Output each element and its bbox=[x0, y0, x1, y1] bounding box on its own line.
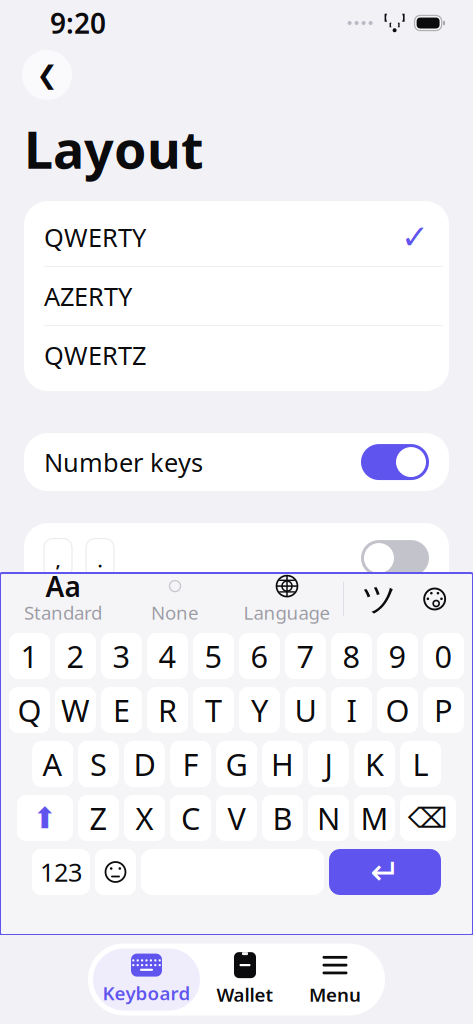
button[interactable]: K bbox=[354, 741, 395, 787]
staticText: QWERTZ bbox=[44, 338, 146, 372]
staticText: B bbox=[272, 798, 292, 838]
button[interactable]: AZERTY bbox=[24, 267, 449, 325]
staticText: R bbox=[158, 690, 177, 730]
button[interactable]: F bbox=[170, 741, 211, 787]
button[interactable]: V bbox=[216, 795, 257, 841]
staticText: G bbox=[225, 744, 247, 784]
staticText: M bbox=[360, 798, 388, 838]
staticText: ↵ bbox=[370, 852, 400, 892]
button[interactable]: 1 bbox=[9, 633, 50, 679]
button[interactable]: QWERTY bbox=[24, 208, 449, 266]
staticText: 8 bbox=[342, 636, 360, 676]
button[interactable]: 9 bbox=[377, 633, 418, 679]
button[interactable]: S bbox=[78, 741, 119, 787]
button[interactable]: O bbox=[377, 687, 418, 733]
button[interactable]: Delete bbox=[400, 795, 456, 841]
staticText: Language bbox=[243, 600, 330, 625]
button[interactable]: J bbox=[308, 741, 349, 787]
button[interactable]: Turn on bbox=[361, 540, 429, 576]
staticText: 9 bbox=[388, 636, 406, 676]
button[interactable]: 5 bbox=[193, 633, 234, 679]
staticText: AZERTY bbox=[44, 279, 132, 313]
staticText: 3 bbox=[112, 636, 130, 676]
button[interactable]: Theme bbox=[415, 577, 455, 621]
staticText: X bbox=[135, 798, 153, 838]
button[interactable]: None bbox=[119, 573, 231, 625]
button[interactable]: L bbox=[400, 741, 441, 787]
button[interactable]: Shift bbox=[17, 795, 73, 841]
button[interactable]: 0 bbox=[423, 633, 464, 679]
button[interactable]: W bbox=[55, 687, 96, 733]
staticText: S bbox=[90, 744, 107, 784]
staticText: Z bbox=[89, 798, 107, 838]
staticText: ⬆ bbox=[32, 801, 57, 835]
button[interactable]: Turn off bbox=[361, 444, 429, 480]
button[interactable]: Menu bbox=[290, 948, 380, 1010]
staticText: QWERTY bbox=[44, 220, 146, 254]
button[interactable]: Q bbox=[9, 687, 50, 733]
staticText: L bbox=[412, 744, 428, 784]
button[interactable]: D bbox=[124, 741, 165, 787]
staticText: F bbox=[182, 744, 198, 784]
button[interactable]: Keyboard bbox=[93, 948, 200, 1010]
staticText: ❮ bbox=[36, 61, 57, 89]
staticText: . bbox=[97, 548, 102, 573]
staticText: U bbox=[294, 690, 316, 730]
staticText: V bbox=[227, 798, 245, 838]
button[interactable]: Y bbox=[239, 687, 280, 733]
button[interactable]: H bbox=[262, 741, 303, 787]
button[interactable]: Back bbox=[22, 50, 72, 100]
button[interactable]: QWERTZ bbox=[24, 326, 449, 384]
staticText: 2 bbox=[66, 636, 84, 676]
staticText: 6 bbox=[250, 636, 268, 676]
staticText: 4 bbox=[158, 636, 176, 676]
staticText: 7 bbox=[296, 636, 314, 676]
button[interactable]: X bbox=[124, 795, 165, 841]
staticText: None bbox=[151, 600, 199, 625]
staticText: Wallet bbox=[216, 982, 273, 1007]
button[interactable]: B bbox=[262, 795, 303, 841]
staticText: ツ bbox=[362, 578, 397, 620]
button[interactable]: 2 bbox=[55, 633, 96, 679]
button[interactable]: Language bbox=[231, 573, 343, 625]
staticText: ✓ bbox=[401, 218, 429, 256]
button[interactable]: Kana keyboard bbox=[359, 577, 399, 621]
button[interactable]: 8 bbox=[331, 633, 372, 679]
staticText: D bbox=[133, 744, 155, 784]
button[interactable]: Return bbox=[329, 849, 441, 895]
button[interactable]: 123 bbox=[32, 849, 90, 895]
staticText: A bbox=[42, 744, 62, 784]
button[interactable]: P bbox=[423, 687, 464, 733]
staticText: Layout bbox=[24, 114, 204, 183]
button[interactable]: T bbox=[193, 687, 234, 733]
button[interactable]: N bbox=[308, 795, 349, 841]
button[interactable]: R bbox=[147, 687, 188, 733]
staticText: W bbox=[61, 690, 90, 730]
staticText: Aa bbox=[45, 567, 80, 605]
button[interactable]: 6 bbox=[239, 633, 280, 679]
button[interactable]: A bbox=[32, 741, 73, 787]
staticText: K bbox=[365, 744, 384, 784]
staticText: Keyboard bbox=[102, 981, 190, 1005]
button[interactable]: 4 bbox=[147, 633, 188, 679]
button[interactable]: M bbox=[354, 795, 395, 841]
staticText: , bbox=[55, 548, 60, 573]
staticText: I bbox=[346, 690, 356, 730]
button[interactable]: Wallet bbox=[200, 948, 290, 1010]
button[interactable]: 7 bbox=[285, 633, 326, 679]
staticText: T bbox=[205, 690, 222, 730]
button[interactable]: C bbox=[170, 795, 211, 841]
button[interactable]: Emoji bbox=[95, 849, 136, 895]
button[interactable]: E bbox=[101, 687, 142, 733]
staticText: Standard bbox=[24, 600, 102, 625]
staticText: P bbox=[434, 690, 453, 730]
staticText: H bbox=[271, 744, 294, 784]
staticText: Number keys bbox=[44, 445, 203, 479]
button[interactable]: I bbox=[331, 687, 372, 733]
button[interactable]: Aa bbox=[7, 573, 119, 625]
button[interactable]: Z bbox=[78, 795, 119, 841]
button[interactable]: 3 bbox=[101, 633, 142, 679]
button[interactable]: G bbox=[216, 741, 257, 787]
button[interactable]: U bbox=[285, 687, 326, 733]
